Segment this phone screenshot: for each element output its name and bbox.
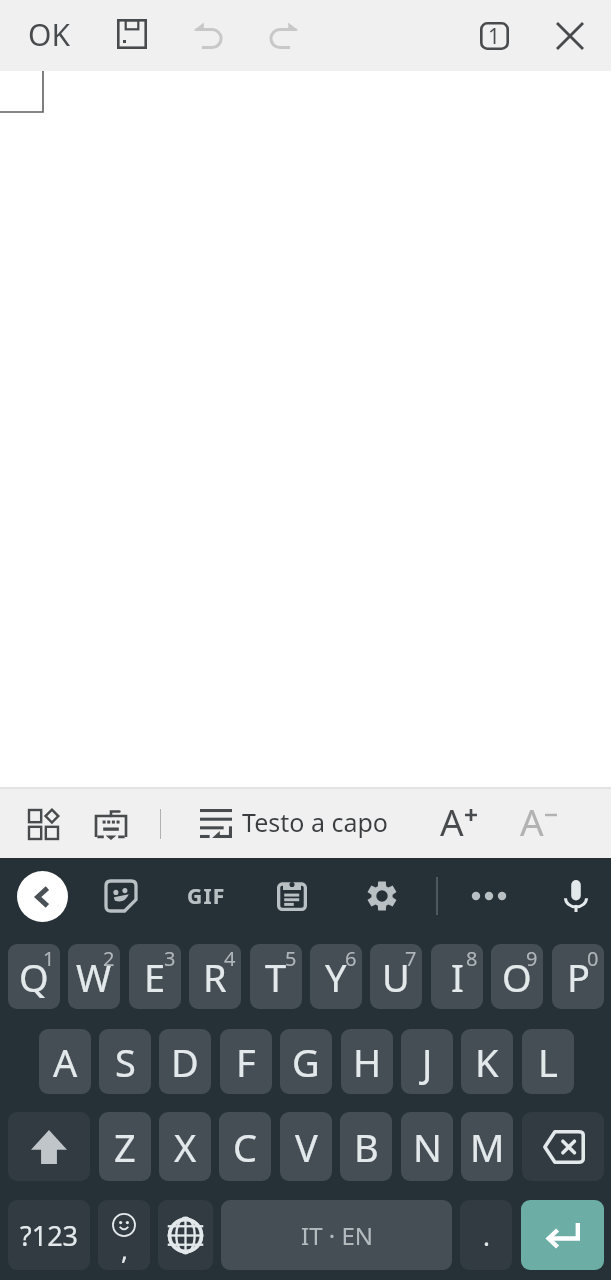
staticText: Y bbox=[325, 951, 347, 1003]
staticText: C bbox=[233, 1121, 258, 1173]
staticText: V bbox=[295, 1121, 318, 1173]
staticText: IT · EN bbox=[301, 1219, 373, 1252]
button[interactable]: G bbox=[280, 1029, 332, 1094]
button[interactable]: GIF bbox=[178, 868, 234, 924]
button[interactable]: U bbox=[370, 944, 422, 1009]
button[interactable]: V bbox=[280, 1112, 332, 1181]
staticText: I bbox=[451, 951, 464, 1003]
staticText: N bbox=[413, 1121, 442, 1173]
button[interactable]: H bbox=[341, 1029, 393, 1094]
staticText: 7 bbox=[405, 945, 417, 972]
button[interactable]: O bbox=[491, 944, 543, 1009]
button[interactable]: Q bbox=[8, 944, 60, 1009]
button[interactable]: Widgets bbox=[17, 798, 69, 850]
button[interactable]: T bbox=[250, 944, 302, 1009]
button[interactable]: More options bbox=[463, 870, 515, 922]
staticText: D bbox=[171, 1036, 199, 1088]
button[interactable]: W bbox=[68, 944, 120, 1009]
button[interactable]: ?123 bbox=[8, 1200, 90, 1270]
button[interactable]: K bbox=[461, 1029, 513, 1094]
button[interactable]: S bbox=[99, 1029, 151, 1094]
button[interactable]: Testo a capo bbox=[196, 794, 392, 850]
staticText: A bbox=[520, 796, 544, 840]
button[interactable]: N bbox=[401, 1112, 453, 1181]
button[interactable]: Close bbox=[541, 7, 599, 65]
staticText: E bbox=[144, 951, 166, 1003]
button[interactable]: Undo bbox=[178, 7, 236, 65]
staticText: F bbox=[236, 1036, 256, 1088]
staticText: Testo a capo bbox=[242, 805, 388, 839]
staticText: OK bbox=[28, 14, 70, 55]
button[interactable]: R bbox=[189, 944, 241, 1009]
staticText: W bbox=[76, 951, 112, 1003]
staticText: Q bbox=[19, 951, 49, 1003]
button[interactable]: B bbox=[340, 1112, 392, 1181]
button[interactable]: J bbox=[401, 1029, 453, 1094]
staticText: , bbox=[121, 1232, 128, 1267]
button[interactable]: D bbox=[159, 1029, 211, 1094]
button[interactable]: I bbox=[431, 944, 483, 1009]
staticText: O bbox=[502, 951, 532, 1003]
button[interactable]: A bbox=[39, 1029, 91, 1094]
staticText: L bbox=[538, 1036, 558, 1088]
staticText: 0 bbox=[587, 945, 599, 972]
staticText: B bbox=[354, 1121, 379, 1173]
staticText: H bbox=[353, 1036, 382, 1088]
staticText: 2 bbox=[103, 945, 115, 972]
button[interactable]: P bbox=[552, 944, 604, 1009]
button[interactable]: Z bbox=[99, 1112, 151, 1181]
button[interactable]: Shift bbox=[8, 1112, 90, 1181]
button[interactable]: Documents bbox=[465, 7, 523, 65]
staticText: GIF bbox=[187, 882, 226, 911]
staticText: Z bbox=[114, 1121, 136, 1173]
staticText: T bbox=[265, 951, 287, 1003]
staticText: 4 bbox=[224, 945, 236, 972]
button[interactable]: C bbox=[219, 1112, 271, 1181]
staticText: 9 bbox=[526, 945, 538, 972]
staticText: 5 bbox=[285, 945, 297, 972]
button[interactable]: Back bbox=[17, 871, 68, 922]
button[interactable]: . bbox=[460, 1200, 512, 1270]
button[interactable]: Enter bbox=[521, 1200, 604, 1270]
staticText: 1 bbox=[43, 945, 55, 972]
button[interactable]: M bbox=[461, 1112, 513, 1181]
staticText: . bbox=[483, 1218, 490, 1253]
staticText: 3 bbox=[164, 945, 176, 972]
staticText: U bbox=[382, 951, 410, 1003]
button[interactable]: Save bbox=[103, 5, 161, 63]
button[interactable]: IT · EN bbox=[221, 1200, 452, 1270]
button[interactable]: Backspace bbox=[522, 1112, 604, 1181]
button[interactable]: Y bbox=[310, 944, 362, 1009]
button[interactable]: OK bbox=[16, 5, 82, 63]
button[interactable]: Clipboard bbox=[266, 870, 318, 922]
staticText: R bbox=[203, 951, 227, 1003]
button[interactable]: E bbox=[129, 944, 181, 1009]
staticText: G bbox=[292, 1036, 320, 1088]
button[interactable]: Stickers bbox=[95, 870, 147, 922]
staticText: A bbox=[53, 1036, 78, 1088]
staticText: K bbox=[475, 1036, 499, 1088]
button[interactable]: L bbox=[522, 1029, 574, 1094]
staticText: X bbox=[174, 1121, 197, 1173]
staticText: S bbox=[115, 1036, 136, 1088]
staticText: A bbox=[440, 796, 464, 840]
button[interactable]: Settings bbox=[356, 870, 408, 922]
button[interactable]: Increase font size bbox=[431, 795, 489, 853]
button[interactable]: Voice input bbox=[550, 870, 602, 922]
staticText: 6 bbox=[345, 945, 357, 972]
button[interactable]: F bbox=[220, 1029, 272, 1094]
button[interactable]: X bbox=[159, 1112, 211, 1181]
button[interactable]: Decrease font size bbox=[511, 795, 569, 853]
button[interactable]: Emoji bbox=[98, 1200, 150, 1270]
button[interactable]: Change language bbox=[158, 1200, 213, 1270]
staticText: 1 bbox=[488, 22, 501, 50]
button[interactable]: Hide keyboard bbox=[85, 798, 137, 850]
staticText: ?123 bbox=[20, 1217, 79, 1254]
staticText: M bbox=[470, 1121, 505, 1173]
staticText: 8 bbox=[466, 945, 478, 972]
button[interactable]: Redo bbox=[256, 7, 314, 65]
staticText: P bbox=[567, 951, 590, 1003]
staticText: J bbox=[422, 1036, 433, 1088]
